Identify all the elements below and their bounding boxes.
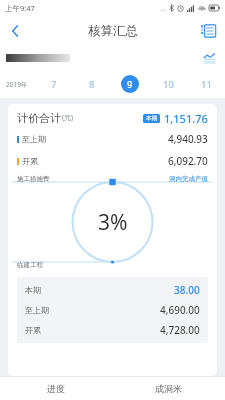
staticText: 至上期 xyxy=(25,305,49,315)
button[interactable]: Chart xyxy=(199,48,219,68)
button[interactable]: 11 xyxy=(197,75,215,93)
staticText: 开累 xyxy=(22,156,38,166)
staticText: 3% xyxy=(98,208,128,237)
button[interactable]: 洞内完成产值 xyxy=(169,175,208,183)
button[interactable]: 9 xyxy=(121,75,139,93)
staticText: 4,940.93 xyxy=(168,132,208,146)
staticText: 临建工程 xyxy=(17,261,43,269)
button[interactable]: 8 xyxy=(83,75,101,93)
staticText: 8 xyxy=(89,78,95,91)
staticText: 洞内完成产值 xyxy=(169,175,208,183)
staticText: 计价合计 xyxy=(17,111,61,125)
staticText: 1,151.76 xyxy=(164,111,208,126)
button[interactable]: 10 xyxy=(159,75,177,93)
staticText: 施工措施费 xyxy=(17,175,50,183)
staticText: 7 xyxy=(51,78,57,91)
staticText: 进度 xyxy=(47,383,65,394)
staticText: 本期 xyxy=(146,115,157,122)
button[interactable]: Back xyxy=(0,16,30,46)
staticText: 4,690.00 xyxy=(160,303,200,317)
staticText: 2019年 xyxy=(6,80,34,89)
button[interactable]: 进度 xyxy=(0,377,112,400)
staticText: 10 xyxy=(163,78,174,91)
button[interactable]: Form list xyxy=(195,18,221,44)
staticText: 4,728.00 xyxy=(160,323,200,337)
staticText: 本期 xyxy=(25,285,41,295)
button[interactable]: 成洞米 xyxy=(112,377,225,400)
staticText: 成洞米 xyxy=(155,383,182,394)
staticText: 6,092.70 xyxy=(168,154,208,168)
button[interactable]: 7 xyxy=(45,75,63,93)
staticText: 核算汇总 xyxy=(88,23,138,39)
staticText: 上午9:47 xyxy=(5,3,35,13)
staticText: 11 xyxy=(201,78,212,91)
staticText: 38.00 xyxy=(174,283,200,297)
staticText: (元) xyxy=(62,113,74,123)
staticText: 9 xyxy=(127,78,133,91)
staticText: 开累 xyxy=(25,325,41,335)
staticText: 至上期 xyxy=(22,134,46,144)
